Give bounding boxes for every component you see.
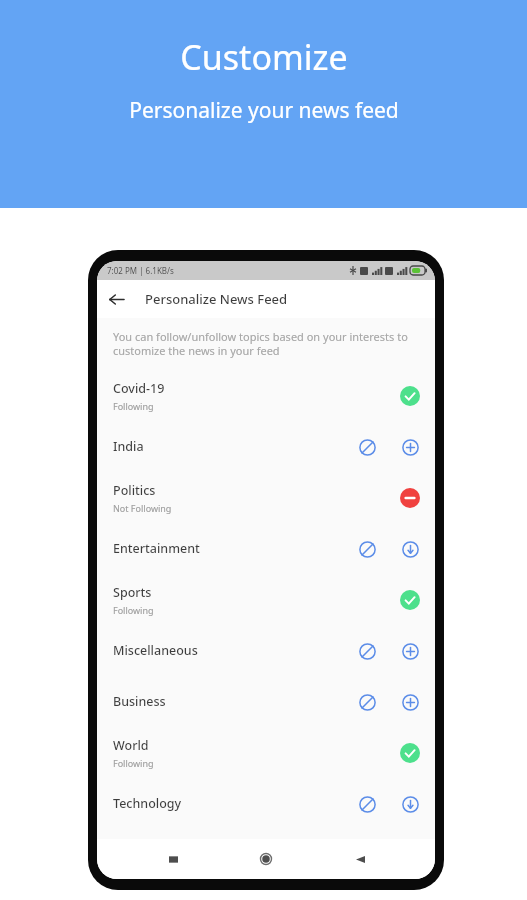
staticText: Personalize your news feed [129,96,399,125]
button[interactable]: Technology [97,778,435,829]
staticText: Following [113,400,154,412]
button[interactable]: Home [248,841,284,877]
staticText: 7:02 PM | 6.1KB/s [107,265,174,276]
button[interactable]: Miscellaneous [97,625,435,676]
staticText: Following [113,757,154,769]
staticText: Covid-19 [113,380,165,397]
button[interactable]: Following [399,589,421,611]
staticText: India [113,438,144,455]
button[interactable]: Following [399,385,421,407]
button[interactable]: Entertainment [97,523,435,574]
staticText: Business [113,693,166,710]
staticText: Entertainment [113,540,200,557]
button[interactable]: Follow topic [399,640,421,662]
staticText: Following [113,604,154,616]
button[interactable]: Back [342,841,378,877]
staticText: Technology [113,795,182,812]
button[interactable]: Follow topic [399,691,421,713]
staticText: Personalize News Feed [145,290,288,308]
staticText: Customize [180,34,348,80]
button[interactable]: Block topic [356,691,378,713]
staticText: Politics [113,482,156,499]
button[interactable]: India [97,421,435,472]
staticText: Miscellaneous [113,642,198,659]
button[interactable]: Not following [399,487,421,509]
button[interactable]: Covid-19 [97,370,435,421]
button[interactable]: Block topic [356,793,378,815]
button[interactable]: Download topic [399,538,421,560]
button[interactable]: Following [399,742,421,764]
staticText: Not Following [113,502,172,514]
button[interactable]: Politics [97,472,435,523]
button[interactable]: Follow topic [399,436,421,458]
button[interactable]: Sports [97,574,435,625]
staticText: You can follow/unfollow topics based on … [113,329,408,358]
button[interactable]: Back [97,280,135,318]
staticText: Sports [113,584,152,601]
button[interactable]: Block topic [356,436,378,458]
staticText: World [113,737,149,754]
button[interactable]: Business [97,676,435,727]
button[interactable]: Download topic [399,793,421,815]
button[interactable]: World [97,727,435,778]
button[interactable]: Block topic [356,640,378,662]
button[interactable]: Block topic [356,538,378,560]
button[interactable]: Recents [155,841,191,877]
